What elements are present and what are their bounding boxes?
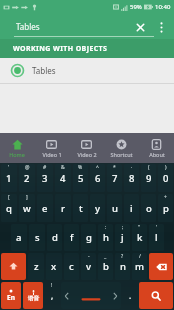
button[interactable]: Home (0, 133, 34, 163)
staticText: Video 1 (42, 151, 62, 158)
staticText: r (61, 202, 66, 215)
staticText: d (52, 231, 58, 244)
button[interactable]: 5 (73, 164, 88, 192)
button[interactable]: f (64, 224, 79, 251)
staticText: ! (51, 282, 53, 289)
staticText: l (155, 231, 158, 244)
staticText: ^ (96, 164, 99, 171)
button[interactable]: m (132, 253, 147, 280)
button[interactable]: Search (139, 282, 173, 309)
staticText: 8 (129, 172, 135, 185)
staticText: ] (26, 194, 28, 201)
button[interactable]: y (90, 194, 105, 222)
button[interactable]: b (98, 253, 113, 280)
button[interactable]: Shortcut (104, 133, 139, 163)
staticText: w (23, 202, 31, 215)
button[interactable]: 6 (90, 164, 105, 192)
button[interactable]: s (29, 224, 45, 251)
staticText: * (113, 164, 116, 171)
staticText: s (35, 231, 40, 244)
staticText: Shortcut (110, 151, 133, 158)
staticText: u (112, 202, 118, 215)
button[interactable]: 2 (19, 164, 35, 192)
button[interactable]: Voice input (23, 282, 43, 309)
button[interactable]: Clear query (130, 17, 150, 37)
button[interactable]: j (115, 224, 130, 251)
staticText: 语音 (28, 295, 39, 302)
staticText: 3 (42, 172, 48, 185)
staticText: ? (121, 253, 124, 260)
staticText: o (146, 202, 152, 215)
button[interactable]: p (158, 194, 173, 222)
staticText: & (61, 164, 65, 171)
staticText: . (129, 290, 132, 301)
button[interactable]: k (132, 224, 147, 251)
button[interactable]: a (11, 224, 27, 251)
button[interactable]: Shift (1, 253, 26, 280)
staticText: Tables (32, 65, 56, 76)
staticText: e (42, 202, 48, 215)
button[interactable]: Switch language (1, 282, 21, 309)
button[interactable]: v (81, 253, 96, 280)
staticText: g (86, 231, 92, 244)
staticText: i (130, 202, 133, 215)
staticText: : (105, 224, 107, 231)
staticText: 6 (95, 172, 101, 185)
button[interactable]: u (107, 194, 122, 222)
button[interactable]: Space (61, 282, 121, 309)
staticText: ' (8, 164, 10, 171)
staticText: ) (165, 164, 167, 171)
button[interactable]: 8 (124, 164, 139, 192)
button[interactable]: q (1, 194, 17, 222)
button[interactable]: c (64, 253, 79, 280)
button[interactable]: More options (151, 17, 171, 37)
button[interactable]: i (124, 194, 139, 222)
staticText: ' (156, 224, 158, 231)
button[interactable]: , (45, 282, 59, 309)
staticText: @ (25, 164, 30, 171)
button[interactable]: Tables (0, 58, 174, 83)
staticText: En (7, 293, 15, 302)
button[interactable]: Video 2 (69, 133, 104, 163)
staticText: 0 (163, 172, 169, 185)
staticText: c (69, 260, 74, 273)
staticText: n (120, 260, 126, 273)
button[interactable]: d (47, 224, 62, 251)
staticText: 59% (130, 3, 142, 11)
button[interactable]: About (139, 133, 174, 163)
button[interactable]: 7 (107, 164, 122, 192)
button[interactable]: w (19, 194, 35, 222)
button[interactable]: 9 (141, 164, 156, 192)
button[interactable]: e (37, 194, 53, 222)
staticText: Home (9, 151, 25, 158)
button[interactable]: z (28, 253, 44, 280)
staticText: 1 (6, 172, 12, 185)
button[interactable]: 1 (1, 164, 17, 192)
button[interactable]: x (46, 253, 62, 280)
staticText: _ (104, 253, 107, 260)
button[interactable]: t (73, 194, 88, 222)
staticText: WORKING WITH OBJECTS (13, 44, 108, 54)
staticText: " (138, 224, 141, 231)
button[interactable]: . (123, 282, 137, 309)
button[interactable]: n (115, 253, 130, 280)
staticText: z (34, 260, 39, 273)
staticText: ; (122, 224, 124, 231)
button[interactable]: 0 (158, 164, 173, 192)
button[interactable]: 3 (37, 164, 53, 192)
staticText: + (164, 194, 167, 201)
button[interactable]: h (98, 224, 113, 251)
button[interactable]: 4 (55, 164, 71, 192)
button[interactable]: o (141, 194, 156, 222)
staticText: 2 (24, 172, 30, 185)
button[interactable]: r (55, 194, 71, 222)
staticText: , (51, 290, 54, 301)
button[interactable]: l (149, 224, 164, 251)
staticText: / (139, 253, 141, 260)
button[interactable]: Backspace (149, 253, 173, 280)
button[interactable]: Video 1 (34, 133, 69, 163)
staticText: % (78, 164, 83, 171)
button[interactable]: g (81, 224, 96, 251)
staticText: p (163, 202, 169, 215)
staticText: 10:40 (155, 3, 171, 11)
